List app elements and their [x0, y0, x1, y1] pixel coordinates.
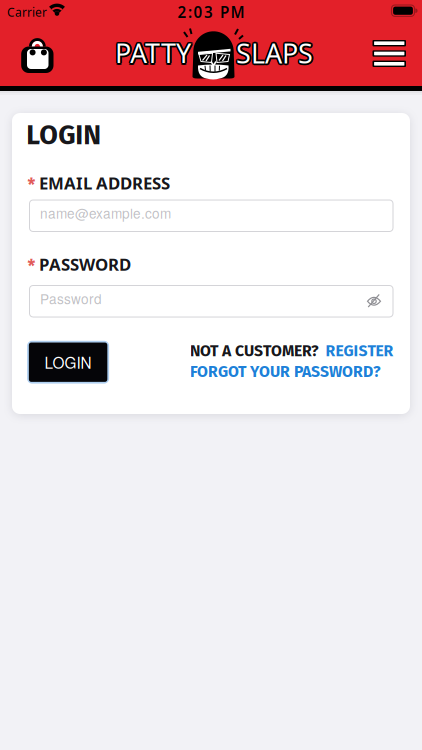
- staticText: *: [28, 175, 36, 196]
- staticText: PATTY: [117, 35, 193, 71]
- staticText: SLAPS: [235, 36, 312, 73]
- staticText: PATTY: [116, 33, 192, 70]
- staticText: *: [28, 256, 36, 277]
- staticText: Password: [40, 288, 102, 308]
- staticText: REGISTER: [325, 342, 393, 360]
- staticText: SLAPS: [237, 36, 314, 73]
- staticText: SLAPS: [236, 36, 313, 73]
- staticText: PATTY: [115, 36, 191, 73]
- staticText: PATTY: [113, 35, 189, 71]
- staticText: PATTY: [115, 33, 191, 70]
- staticText: SLAPS: [235, 33, 312, 70]
- button[interactable]: FORGOT YOUR PASSWORD?: [190, 362, 381, 381]
- button[interactable]: Show password: [367, 295, 393, 307]
- staticText: SLAPS: [237, 33, 314, 70]
- staticText: 2:03 PM: [177, 2, 244, 22]
- staticText: NOT A CUSTOMER?: [190, 342, 319, 360]
- staticText: name@example.com: [40, 203, 171, 222]
- button[interactable]: REGISTER: [325, 342, 393, 360]
- button[interactable]: Cart: [21, 37, 54, 73]
- staticText: SLAPS: [236, 33, 313, 70]
- staticText: FORGOT YOUR PASSWORD?: [190, 362, 381, 381]
- staticText: PASSWORD: [39, 253, 131, 276]
- staticText: PATTY: [114, 36, 190, 73]
- button[interactable]: Menu: [372, 40, 406, 67]
- staticText: SLAPS: [234, 35, 311, 71]
- staticText: Carrier: [7, 4, 47, 20]
- staticText: PATTY: [115, 35, 191, 71]
- staticText: LOGIN: [26, 119, 101, 151]
- staticText: PATTY: [116, 36, 192, 73]
- staticText: SLAPS: [238, 35, 315, 71]
- staticText: EMAIL ADDRESS: [39, 172, 170, 194]
- staticText: LOGIN: [45, 351, 92, 373]
- button[interactable]: LOGIN: [27, 341, 109, 384]
- staticText: SLAPS: [236, 35, 313, 71]
- staticText: PATTY: [114, 33, 190, 70]
